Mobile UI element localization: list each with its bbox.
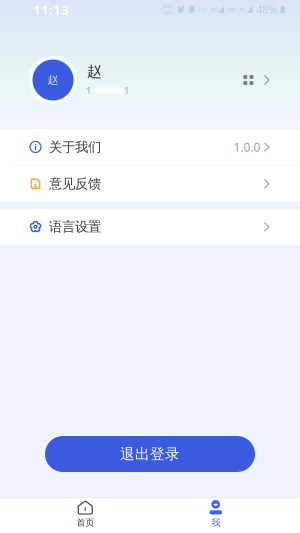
- staticText: 1.0.0: [233, 139, 260, 155]
- staticText: 语言设置: [49, 219, 101, 235]
- staticText: 1: [86, 84, 91, 97]
- staticText: 我: [211, 517, 220, 528]
- staticText: 赵: [47, 73, 58, 86]
- button[interactable]: 关于我们: [0, 129, 300, 165]
- staticText: 4G: [210, 6, 217, 13]
- button[interactable]: 扫码: [238, 66, 274, 94]
- button[interactable]: 退出登录: [45, 436, 255, 472]
- staticText: 退出登录: [120, 445, 180, 463]
- staticText: 48%: [256, 2, 277, 17]
- staticText: 关于我们: [49, 139, 101, 155]
- button[interactable]: 意见反馈: [0, 166, 300, 202]
- staticText: K/s: [164, 9, 172, 17]
- staticText: 1: [124, 84, 129, 97]
- staticText: 赵: [87, 62, 102, 80]
- button[interactable]: 首页: [20, 496, 150, 533]
- button[interactable]: 我: [150, 496, 281, 533]
- staticText: 首页: [76, 517, 94, 528]
- staticText: 意见反馈: [49, 176, 101, 192]
- staticText: 4G: [239, 6, 246, 13]
- staticText: HD: [199, 6, 207, 13]
- staticText: 6.27: [163, 2, 173, 9]
- button[interactable]: 语言设置: [0, 209, 300, 245]
- staticText: HD: [227, 6, 235, 13]
- staticText: 11:13: [33, 1, 69, 18]
